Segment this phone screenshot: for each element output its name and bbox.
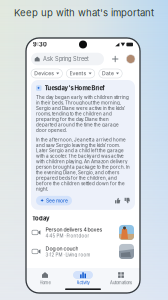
- button[interactable]: Home: [26, 271, 64, 285]
- staticText: Date: [102, 70, 114, 76]
- staticText: Today: [32, 215, 50, 222]
- staticText: In the afternoon, Jeanetta arrived home …: [36, 137, 130, 192]
- staticText: ✦: [37, 86, 41, 91]
- staticText: Devices: [34, 70, 54, 76]
- button[interactable]: Dislike: [120, 198, 130, 203]
- button[interactable]: Add: [110, 54, 120, 64]
- staticText: Ask Spring Street: [43, 56, 89, 62]
- button[interactable]: ✦: [36, 196, 72, 205]
- button[interactable]: Dog on couch: [26, 242, 140, 261]
- staticText: See more: [46, 198, 68, 204]
- staticText: Automations: [110, 280, 132, 285]
- button[interactable]: Events: [66, 69, 95, 78]
- button[interactable]: Date: [99, 69, 122, 78]
- button[interactable]: Person delivers 4 boxes: [26, 223, 140, 242]
- button[interactable]: Ask Spring Street: [31, 53, 104, 65]
- staticText: 9:30: [33, 41, 47, 48]
- staticText: Person delivers 4 boxes: [45, 226, 102, 233]
- staticText: Tuesday's Home Brief: [45, 84, 105, 92]
- staticText: Activity: [76, 280, 89, 285]
- staticText: Home: [39, 280, 50, 285]
- button[interactable]: Like: [115, 198, 120, 203]
- staticText: 4:45 PM · Front door: [45, 233, 89, 238]
- staticText: The day began early with children stirri…: [36, 95, 129, 133]
- button[interactable]: Activity: [64, 271, 102, 285]
- button[interactable]: Devices: [31, 69, 62, 78]
- button[interactable]: Account: [126, 55, 135, 63]
- button[interactable]: Automations: [102, 271, 140, 285]
- staticText: 3:12 PM · Living room: [45, 252, 90, 257]
- staticText: ✦: [40, 198, 44, 204]
- staticText: Dog on couch: [45, 245, 78, 252]
- staticText: Events: [70, 70, 87, 76]
- staticText: Keep up with what's important: [14, 7, 154, 19]
